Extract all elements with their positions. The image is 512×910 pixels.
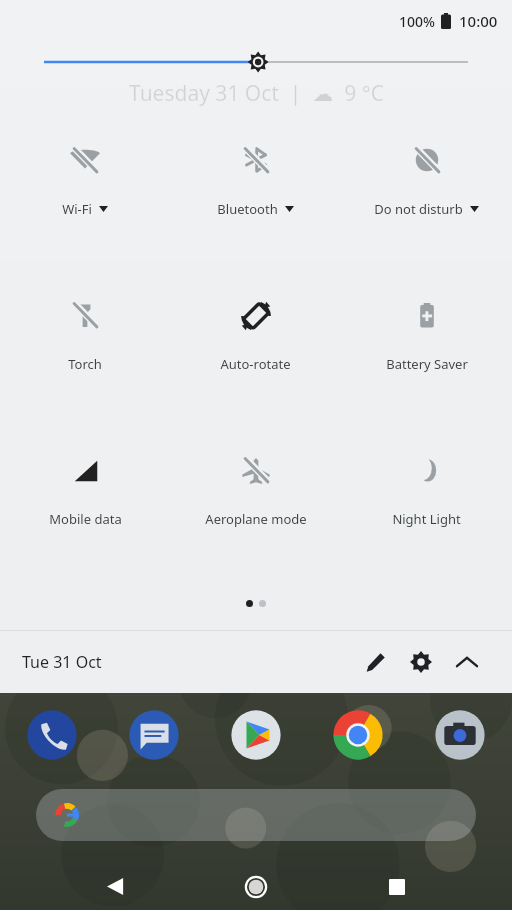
- staticText: 10:00: [459, 11, 498, 31]
- button[interactable]: Battery Saver: [341, 281, 512, 436]
- staticText: Battery Saver: [386, 355, 468, 373]
- button[interactable]: Recent apps: [371, 863, 423, 910]
- staticText: Wi-Fi: [62, 200, 92, 218]
- button[interactable]: Collapse: [444, 639, 490, 685]
- staticText: Torch: [68, 355, 102, 373]
- staticText: Tue 31 Oct: [22, 651, 102, 673]
- staticText: Bluetooth: [217, 200, 278, 218]
- button[interactable]: Night Light: [341, 436, 512, 591]
- button[interactable]: Phone: [24, 707, 80, 763]
- button[interactable]: Back: [89, 863, 141, 910]
- button[interactable]: Wi-Fi: [0, 126, 170, 281]
- staticText: Night Light: [392, 510, 461, 528]
- staticText: Tuesday 31 Oct | ☁ 9 °C: [129, 79, 384, 108]
- button[interactable]: Brightness: [0, 42, 512, 82]
- button[interactable]: Messages: [126, 707, 182, 763]
- button[interactable]: Camera: [432, 707, 488, 763]
- staticText: Do not disturb: [374, 200, 463, 218]
- staticText: Aeroplane mode: [205, 510, 307, 528]
- button[interactable]: Bluetooth: [170, 126, 341, 281]
- button[interactable]: Google search: [36, 789, 476, 841]
- button[interactable]: Mobile data: [0, 436, 170, 591]
- button[interactable]: Play Store: [228, 707, 284, 763]
- button[interactable]: Chrome: [330, 707, 386, 763]
- button[interactable]: Torch: [0, 281, 170, 436]
- button[interactable]: Do not disturb: [341, 126, 512, 281]
- other: Brightness: [44, 44, 468, 80]
- button[interactable]: Aeroplane mode: [170, 436, 341, 591]
- button[interactable]: Home: [230, 863, 282, 910]
- staticText: Auto-rotate: [220, 355, 291, 373]
- staticText: 100%: [399, 12, 435, 31]
- button[interactable]: Auto-rotate: [170, 281, 341, 436]
- staticText: Mobile data: [49, 510, 122, 528]
- button[interactable]: Edit: [352, 639, 398, 685]
- button[interactable]: Settings: [398, 639, 444, 685]
